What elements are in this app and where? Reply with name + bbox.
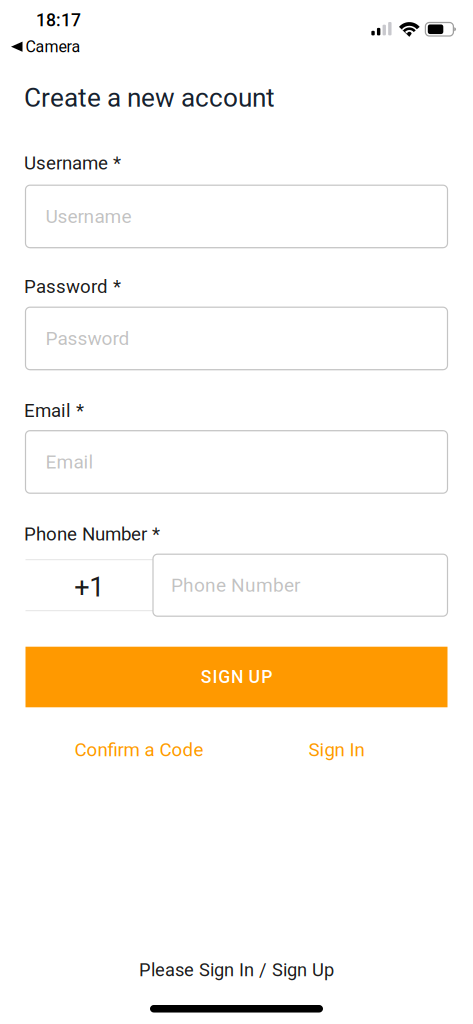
- staticText: Camera: [25, 37, 80, 56]
- staticText: Password: [45, 327, 129, 350]
- staticText: Create a new account: [24, 82, 275, 113]
- staticText: Phone Number *: [24, 523, 160, 545]
- staticText: Email *: [24, 400, 84, 422]
- staticText: Email: [45, 451, 93, 473]
- button[interactable]: Sign In: [308, 739, 364, 760]
- button[interactable]: SIGN UP: [25, 647, 447, 707]
- staticText: 18:17: [36, 10, 81, 30]
- button[interactable]: Back to Camera: [0, 38, 80, 56]
- button[interactable]: Confirm a Code: [74, 739, 203, 760]
- staticText: Username *: [24, 152, 121, 174]
- staticText: Username: [45, 205, 131, 228]
- staticText: SIGN UP: [201, 667, 272, 687]
- staticText: Please Sign In / Sign Up: [139, 959, 334, 981]
- button[interactable]: +1: [25, 559, 153, 611]
- staticText: Confirm a Code: [74, 739, 203, 761]
- staticText: +1: [74, 571, 104, 603]
- staticText: Phone Number: [171, 574, 300, 596]
- staticText: Password *: [24, 276, 121, 298]
- staticText: Sign In: [308, 739, 364, 761]
